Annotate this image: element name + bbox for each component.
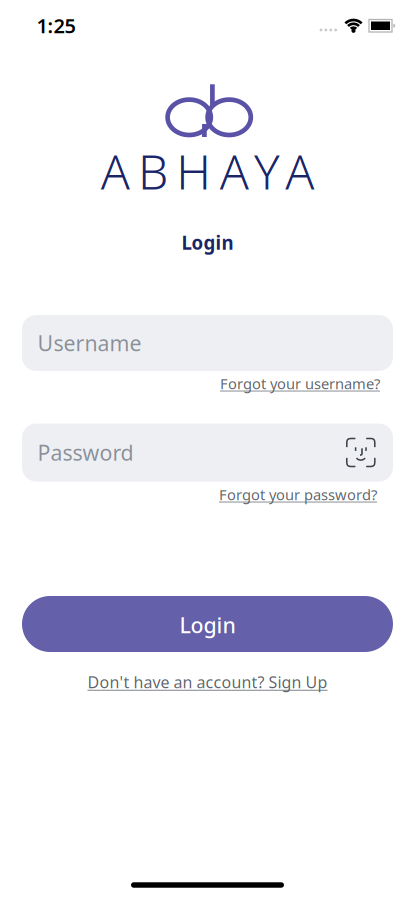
staticText: Login [181, 230, 233, 255]
button[interactable]: Password [22, 423, 393, 481]
button[interactable]: Forgot your username? [220, 374, 380, 393]
button[interactable]: Username [22, 315, 393, 371]
button[interactable]: Sign in with Face ID [346, 437, 376, 467]
staticText: Forgot your username? [220, 374, 380, 393]
staticText: Username [37, 329, 141, 357]
button[interactable]: Login [22, 596, 393, 652]
staticText: ABHAYA [101, 139, 314, 203]
staticText: Password [37, 438, 133, 467]
staticText: Forgot your password? [219, 485, 377, 504]
staticText: Don't have an account? Sign Up [87, 671, 327, 693]
staticText: 1:25 [36, 12, 75, 39]
button[interactable]: Forgot your password? [219, 485, 377, 504]
button[interactable]: Don't have an account? Sign Up [87, 671, 327, 693]
staticText: Login [179, 611, 235, 639]
